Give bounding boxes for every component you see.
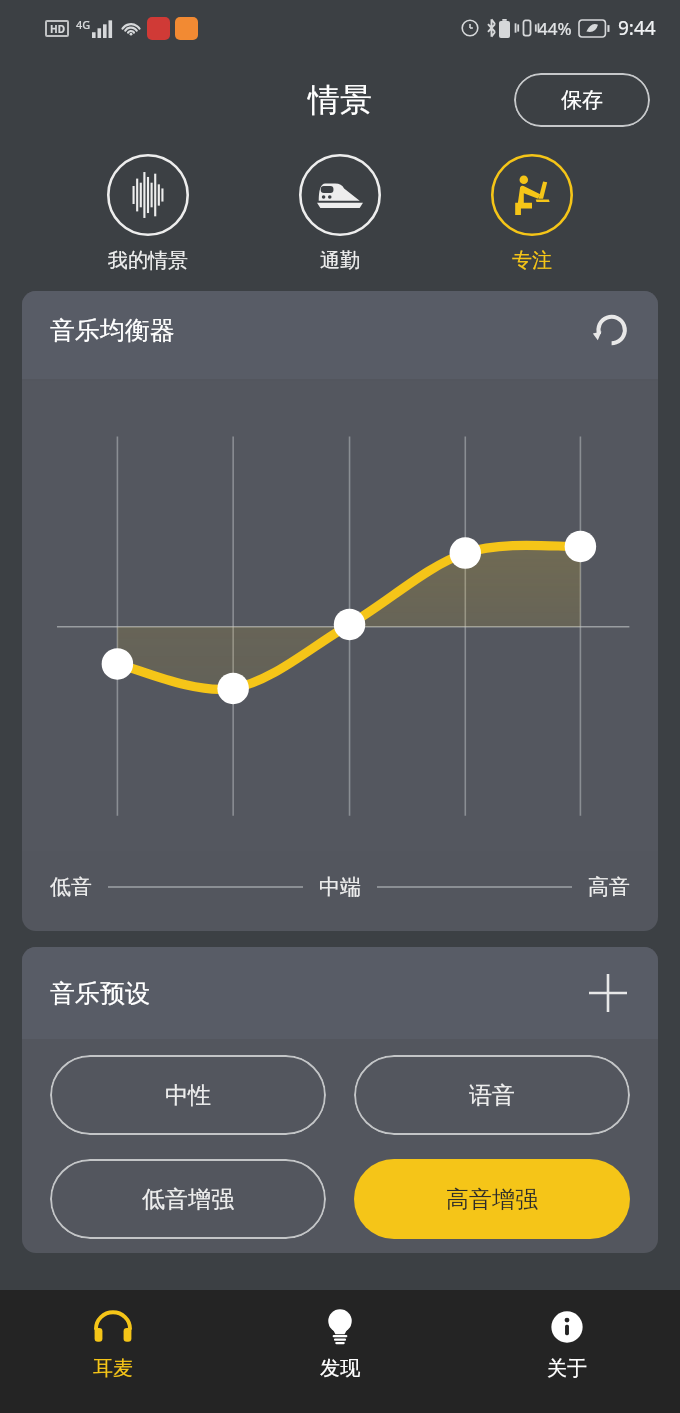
button[interactable]: 语音 (354, 1055, 630, 1135)
button[interactable]: Add preset (584, 969, 632, 1017)
staticText: 情景 (308, 80, 372, 120)
staticText: 通勤 (320, 248, 360, 273)
button[interactable]: Reset equalizer (586, 306, 634, 354)
staticText: 耳麦 (93, 1356, 133, 1381)
staticText: 语音 (469, 1081, 515, 1110)
staticText: 9:44 (618, 15, 656, 41)
staticText: 低音增强 (142, 1185, 234, 1214)
staticText: 音乐均衡器 (50, 315, 175, 346)
staticText: 关于 (547, 1356, 587, 1381)
staticText: HD (50, 22, 65, 36)
staticText: 发现 (320, 1356, 360, 1381)
button[interactable]: 低音增强 (50, 1159, 326, 1239)
button[interactable]: 保存 (514, 73, 650, 127)
staticText: 保存 (561, 87, 603, 113)
button[interactable]: 耳麦 (0, 1290, 226, 1413)
button[interactable]: 我的情景 (78, 154, 218, 273)
button[interactable]: 专注 (462, 154, 602, 273)
staticText: 中性 (165, 1081, 211, 1110)
staticText: 高音 (588, 874, 630, 900)
button[interactable]: 关于 (453, 1290, 680, 1413)
staticText: 音乐预设 (50, 978, 150, 1009)
staticText: 低音 (50, 874, 92, 900)
staticText: 高音增强 (446, 1185, 538, 1214)
staticText: 中端 (319, 874, 361, 900)
button[interactable]: 发现 (226, 1290, 453, 1413)
staticText: 我的情景 (108, 248, 188, 273)
button[interactable]: 中性 (50, 1055, 326, 1135)
staticText: 4G (76, 17, 91, 32)
staticText: 专注 (512, 248, 552, 273)
button[interactable]: 高音增强 (354, 1159, 630, 1239)
button[interactable]: 通勤 (270, 154, 410, 273)
staticText: 44% (538, 17, 572, 40)
